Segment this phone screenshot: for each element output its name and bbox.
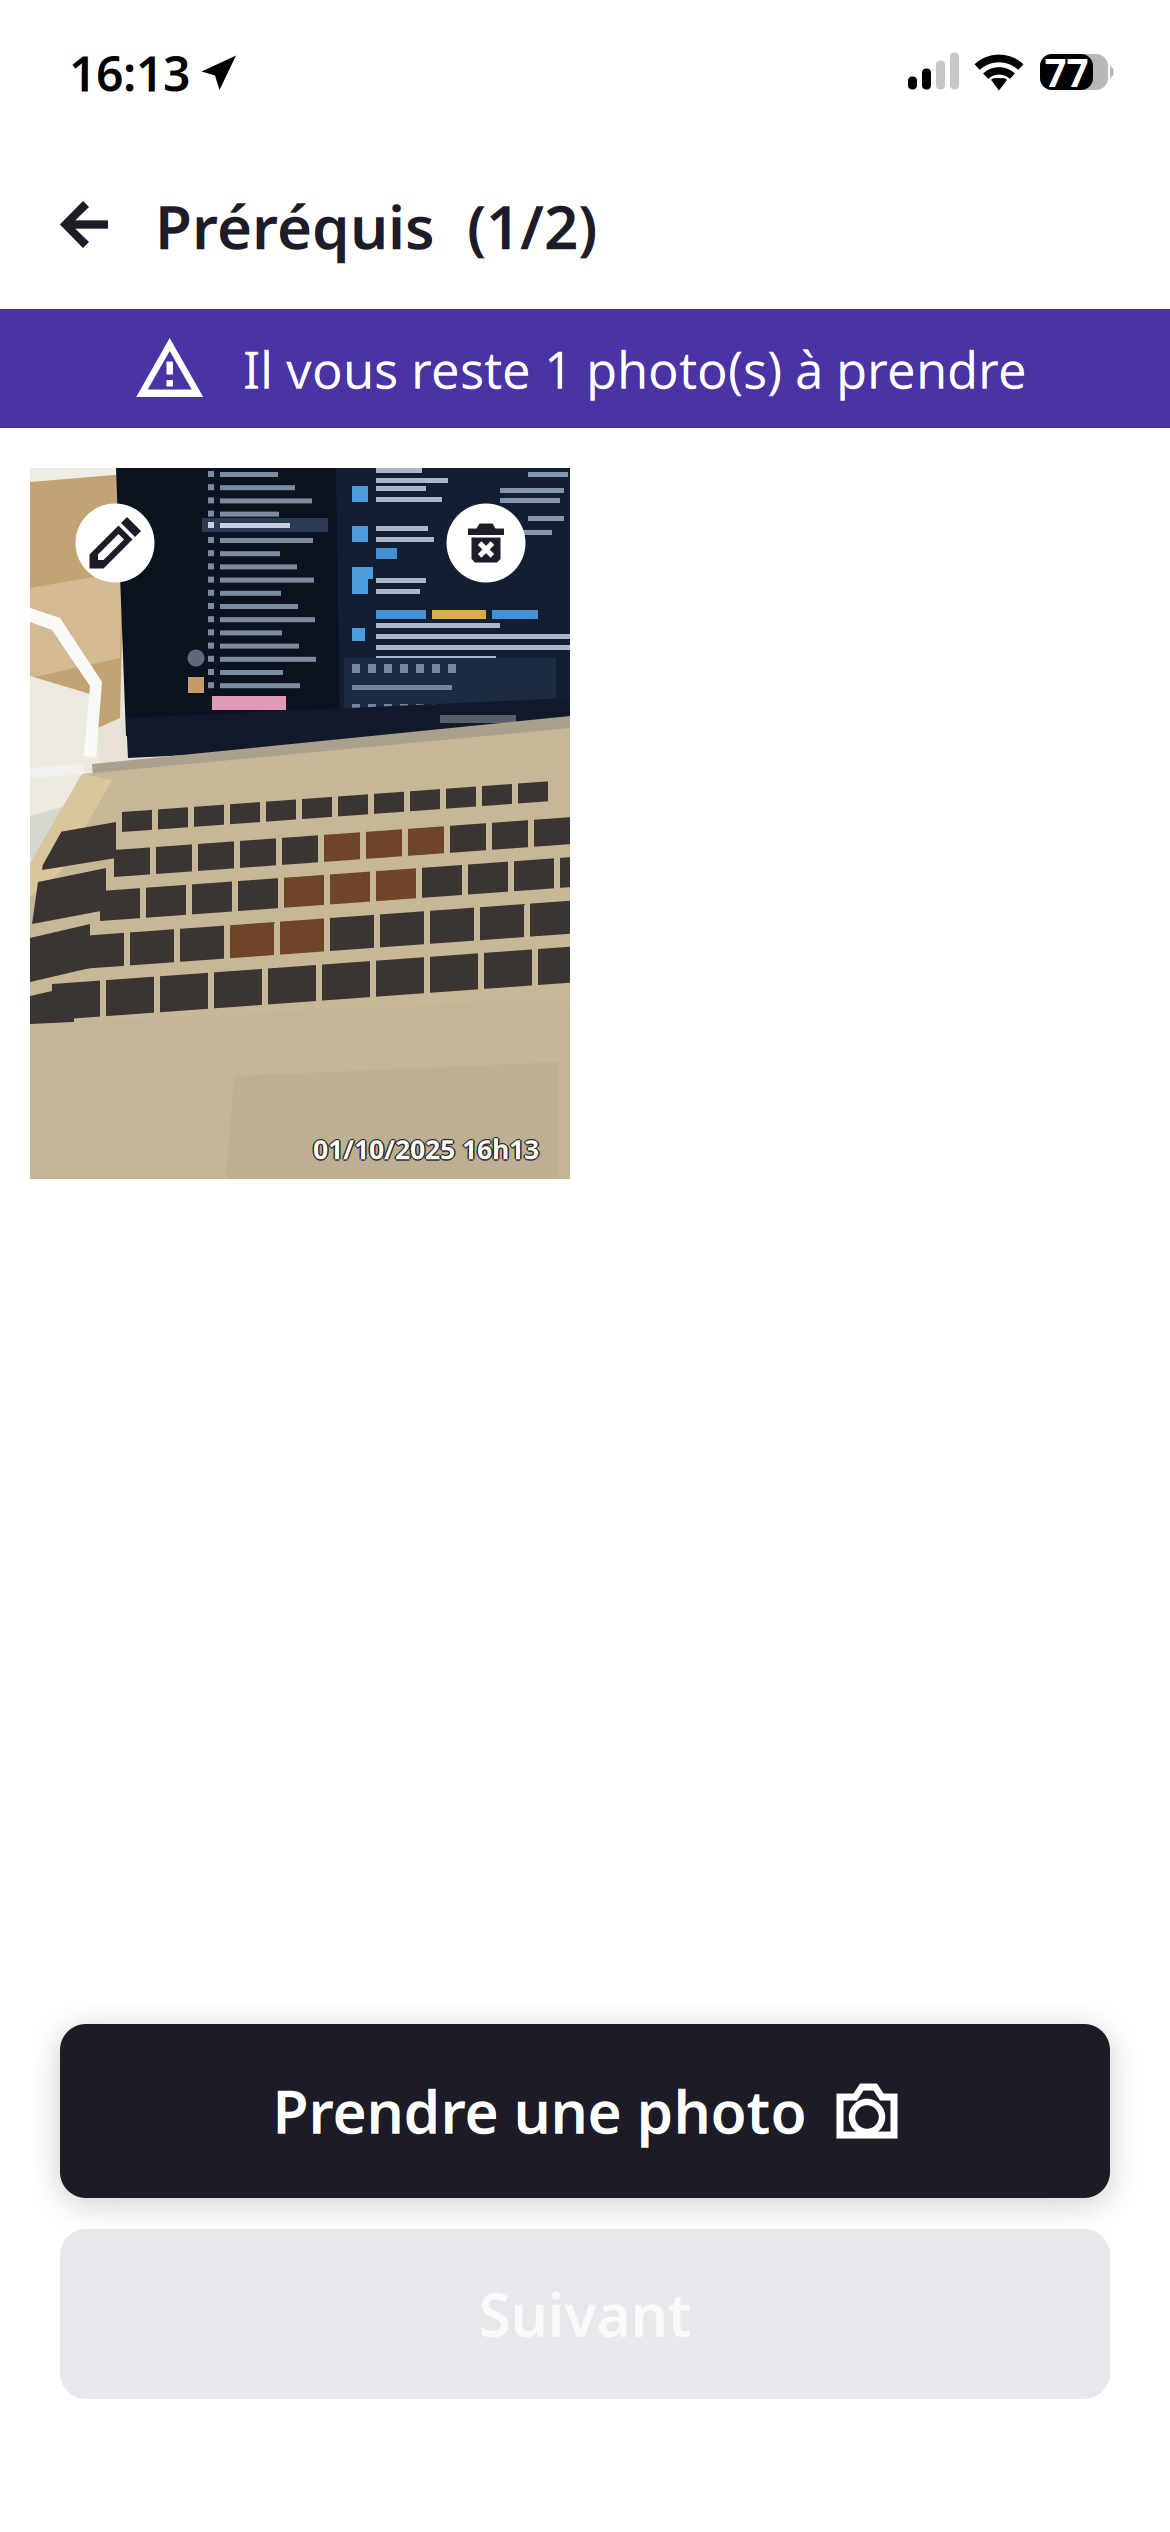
staticText: Suivant bbox=[478, 2275, 691, 2353]
button[interactable]: Back bbox=[29, 169, 139, 279]
button[interactable]: Delete photo bbox=[446, 503, 525, 582]
staticText: 01/10/2025 16h13 bbox=[313, 1130, 539, 1165]
button[interactable]: Prendre une photo bbox=[60, 2024, 1110, 2198]
staticText: 01/10/2025 16h13 bbox=[314, 1131, 540, 1167]
staticText: 01/10/2025 16h13 bbox=[312, 1131, 538, 1167]
staticText: Préréquis (1/2) bbox=[155, 186, 597, 266]
staticText: 16:13 bbox=[69, 41, 190, 105]
staticText: 01/10/2025 16h13 bbox=[313, 1131, 539, 1167]
staticText: 01/10/2025 16h13 bbox=[313, 1133, 539, 1168]
button[interactable]: Edit photo bbox=[75, 503, 154, 582]
staticText: Prendre une photo bbox=[272, 2072, 806, 2150]
staticText: 77 bbox=[1044, 46, 1088, 98]
staticText: Il vous reste 1 photo(s) à prendre bbox=[243, 335, 1027, 403]
